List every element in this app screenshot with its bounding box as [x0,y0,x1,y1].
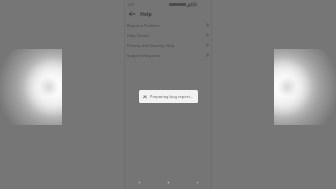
button[interactable]: Privacy and Security Help [124,40,212,50]
button[interactable]: Help Center [124,30,212,40]
staticText: Report a Problem [127,23,160,28]
staticText: Help Center [127,33,150,38]
button[interactable]: Back [124,176,154,189]
staticText: 1:47 [127,2,135,7]
button[interactable]: Home [154,176,183,189]
button[interactable]: Report a Problem [124,20,212,30]
staticText: Privacy and Security Help [127,43,175,48]
button[interactable]: Preparing bug report… [139,90,198,103]
staticText: Support Requests [127,53,161,58]
staticText: Help [140,10,152,17]
staticText: Preparing bug report… [150,94,194,99]
button[interactable]: Back [127,9,136,18]
button[interactable]: Support Requests [124,50,212,60]
button[interactable]: Recents [183,176,212,189]
